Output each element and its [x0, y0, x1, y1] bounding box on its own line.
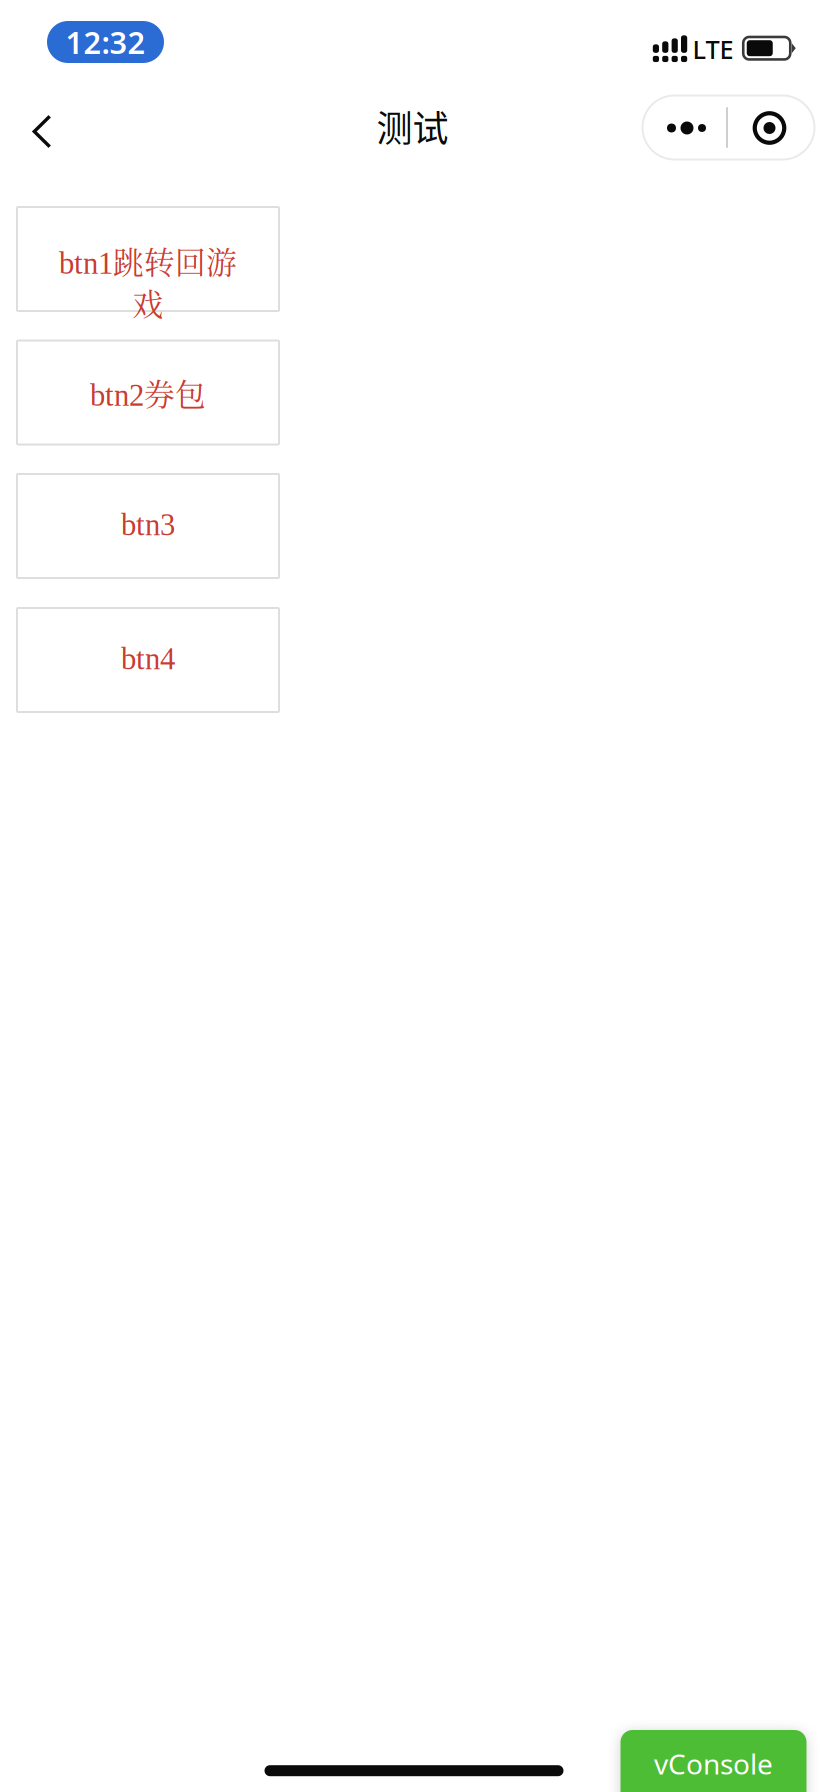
staticText: btn1跳转回游 [59, 238, 237, 282]
button[interactable]: btn1跳转回游 [17, 207, 279, 311]
staticText: vConsole [654, 1745, 773, 1782]
staticText: LTE [692, 32, 733, 66]
button[interactable]: btn3 [17, 474, 279, 578]
staticText: 测试 [376, 100, 448, 152]
button[interactable]: vConsole [620, 1730, 806, 1792]
staticText: btn4 [121, 642, 175, 676]
staticText: btn3 [121, 508, 175, 542]
button[interactable]: Mini Program menu [642, 95, 814, 159]
staticText: btn2券包 [90, 370, 206, 415]
button[interactable]: btn2券包 [17, 340, 279, 444]
staticText: 戏 [132, 280, 163, 325]
button[interactable]: btn4 [17, 608, 279, 712]
staticText: 12:32 [65, 22, 145, 62]
button[interactable]: Back [2, 91, 82, 171]
